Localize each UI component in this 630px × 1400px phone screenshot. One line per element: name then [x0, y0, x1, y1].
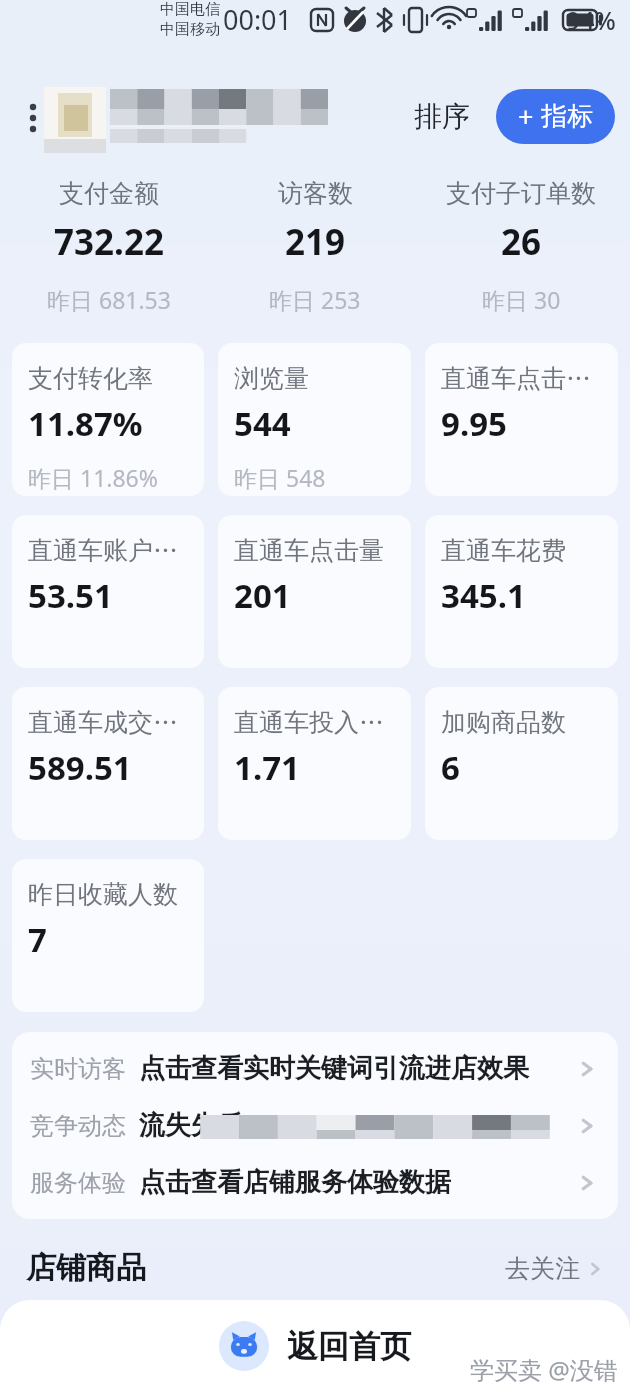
- button[interactable]: 实时访客: [12, 1040, 618, 1097]
- staticText: 实时访客: [30, 1054, 126, 1084]
- staticText: 服务体验: [30, 1168, 126, 1198]
- staticText: 直通车点击转…: [441, 363, 610, 394]
- button[interactable]: 返回首页: [0, 1300, 630, 1400]
- button[interactable]: 竞争动态: [12, 1097, 618, 1154]
- button[interactable]: 浏览量: [218, 343, 411, 496]
- staticText: 11.87%: [28, 401, 143, 446]
- staticText: 219: [285, 218, 346, 266]
- button[interactable]: More options: [16, 99, 50, 133]
- staticText: 返回首页: [287, 1327, 411, 1366]
- staticText: 昨日 11.86%: [28, 462, 158, 493]
- staticText: 昨日收藏人数: [28, 879, 178, 910]
- staticText: 流失先后: [139, 1109, 243, 1142]
- staticText: 点击查看实时关键词引流进店效果: [139, 1052, 529, 1085]
- button[interactable]: 支付金额: [6, 174, 212, 319]
- button[interactable]: 加购商品数: [425, 687, 618, 840]
- staticText: 00:01: [223, 1, 293, 38]
- staticText: 直通车点击量: [234, 535, 384, 566]
- button[interactable]: 直通车账户余额: [12, 515, 204, 668]
- button[interactable]: 去关注: [505, 1253, 604, 1284]
- staticText: 9.95: [441, 401, 507, 446]
- button[interactable]: 排序: [408, 93, 476, 140]
- staticText: 学买卖 @没错: [470, 1353, 618, 1386]
- button[interactable]: +: [496, 89, 615, 144]
- button[interactable]: 直通车点击量: [218, 515, 411, 668]
- staticText: 201: [234, 573, 291, 618]
- staticText: 直通车花费: [441, 535, 566, 566]
- staticText: 竞争动态: [30, 1111, 126, 1141]
- staticText: 浏览量: [234, 363, 309, 394]
- staticText: +: [518, 98, 534, 135]
- button[interactable]: 直通车点击转…: [425, 343, 618, 496]
- staticText: 直通车投入产…: [234, 707, 403, 738]
- staticText: 昨日 253: [269, 284, 361, 315]
- staticText: 支付转化率: [28, 363, 153, 394]
- staticText: 支付子订单数: [446, 178, 596, 209]
- button[interactable]: 支付转化率: [12, 343, 204, 496]
- staticText: 访客数: [278, 178, 353, 209]
- staticText: 345.1: [441, 573, 526, 618]
- staticText: 昨日 548: [234, 462, 326, 493]
- staticText: 中国电信: [160, 0, 220, 19]
- button[interactable]: 支付子订单数: [418, 174, 624, 319]
- staticText: 7: [28, 917, 47, 962]
- staticText: 排序: [414, 99, 470, 134]
- staticText: 6: [441, 745, 460, 790]
- staticText: 589.51: [28, 745, 132, 790]
- staticText: 直通车成交金额: [28, 707, 196, 738]
- staticText: 加购商品数: [441, 707, 566, 738]
- button[interactable]: 昨日收藏人数: [12, 859, 204, 1012]
- staticText: 指标: [541, 100, 593, 133]
- staticText: 732.22: [54, 218, 164, 266]
- staticText: 26: [501, 218, 542, 266]
- button[interactable]: 服务体验: [12, 1154, 618, 1211]
- staticText: 支付金额: [59, 178, 159, 209]
- staticText: 昨日 30: [482, 284, 561, 315]
- staticText: 544: [234, 401, 291, 446]
- staticText: 去关注: [505, 1253, 580, 1284]
- button[interactable]: 直通车成交金额: [12, 687, 204, 840]
- staticText: 1.71: [234, 745, 300, 790]
- button[interactable]: 访客数: [212, 174, 418, 319]
- staticText: 中国移动: [160, 20, 220, 39]
- staticText: 店铺商品: [26, 1249, 146, 1287]
- staticText: 53.51: [28, 573, 113, 618]
- button[interactable]: 直通车投入产…: [218, 687, 411, 840]
- staticText: 点击查看店铺服务体验数据: [139, 1166, 451, 1199]
- button[interactable]: 直通车花费: [425, 515, 618, 668]
- staticText: 昨日 681.53: [47, 284, 171, 315]
- staticText: 直通车账户余额: [28, 535, 196, 566]
- staticText: 94%: [566, 3, 616, 37]
